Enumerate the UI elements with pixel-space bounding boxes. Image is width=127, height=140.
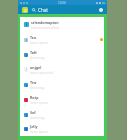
staticText: Teu: [30, 35, 37, 40]
staticText: Chat: [38, 7, 48, 13]
staticText: Jelly: [30, 124, 38, 129]
button[interactable]: Tiw: [20, 77, 104, 92]
button[interactable]: unjgel: [20, 62, 104, 77]
staticText: lorem ipsum: [30, 41, 48, 45]
button[interactable]: Sof: [20, 107, 104, 122]
staticText: Rotp: [30, 95, 39, 100]
staticText: lorem ipsum: [30, 130, 48, 134]
button[interactable]: Rotp: [20, 92, 104, 107]
staticText: lorem ipsum dol: [30, 71, 53, 75]
button[interactable]: Taft: [20, 47, 104, 62]
button[interactable]: App logo: [22, 7, 28, 13]
staticText: short msg: [30, 116, 45, 120]
staticText: srlandomapton ttad: [31, 26, 60, 30]
staticText: Tiw: [30, 80, 37, 85]
button[interactable]: Profile: [99, 8, 103, 12]
staticText: lorem ipsum: [30, 101, 48, 105]
staticText: Sof: [30, 110, 36, 115]
staticText: short msg: [30, 56, 45, 60]
button[interactable]: Teu: [20, 32, 104, 47]
button[interactable]: srlandomapton: [20, 17, 104, 32]
button[interactable]: Jelly: [20, 122, 104, 136]
staticText: Taft: [30, 50, 37, 55]
staticText: unjgel: [30, 65, 42, 70]
staticText: 12:30: [58, 1, 66, 5]
staticText: short msg: [30, 86, 45, 90]
staticText: srlandomapton: [31, 20, 59, 25]
